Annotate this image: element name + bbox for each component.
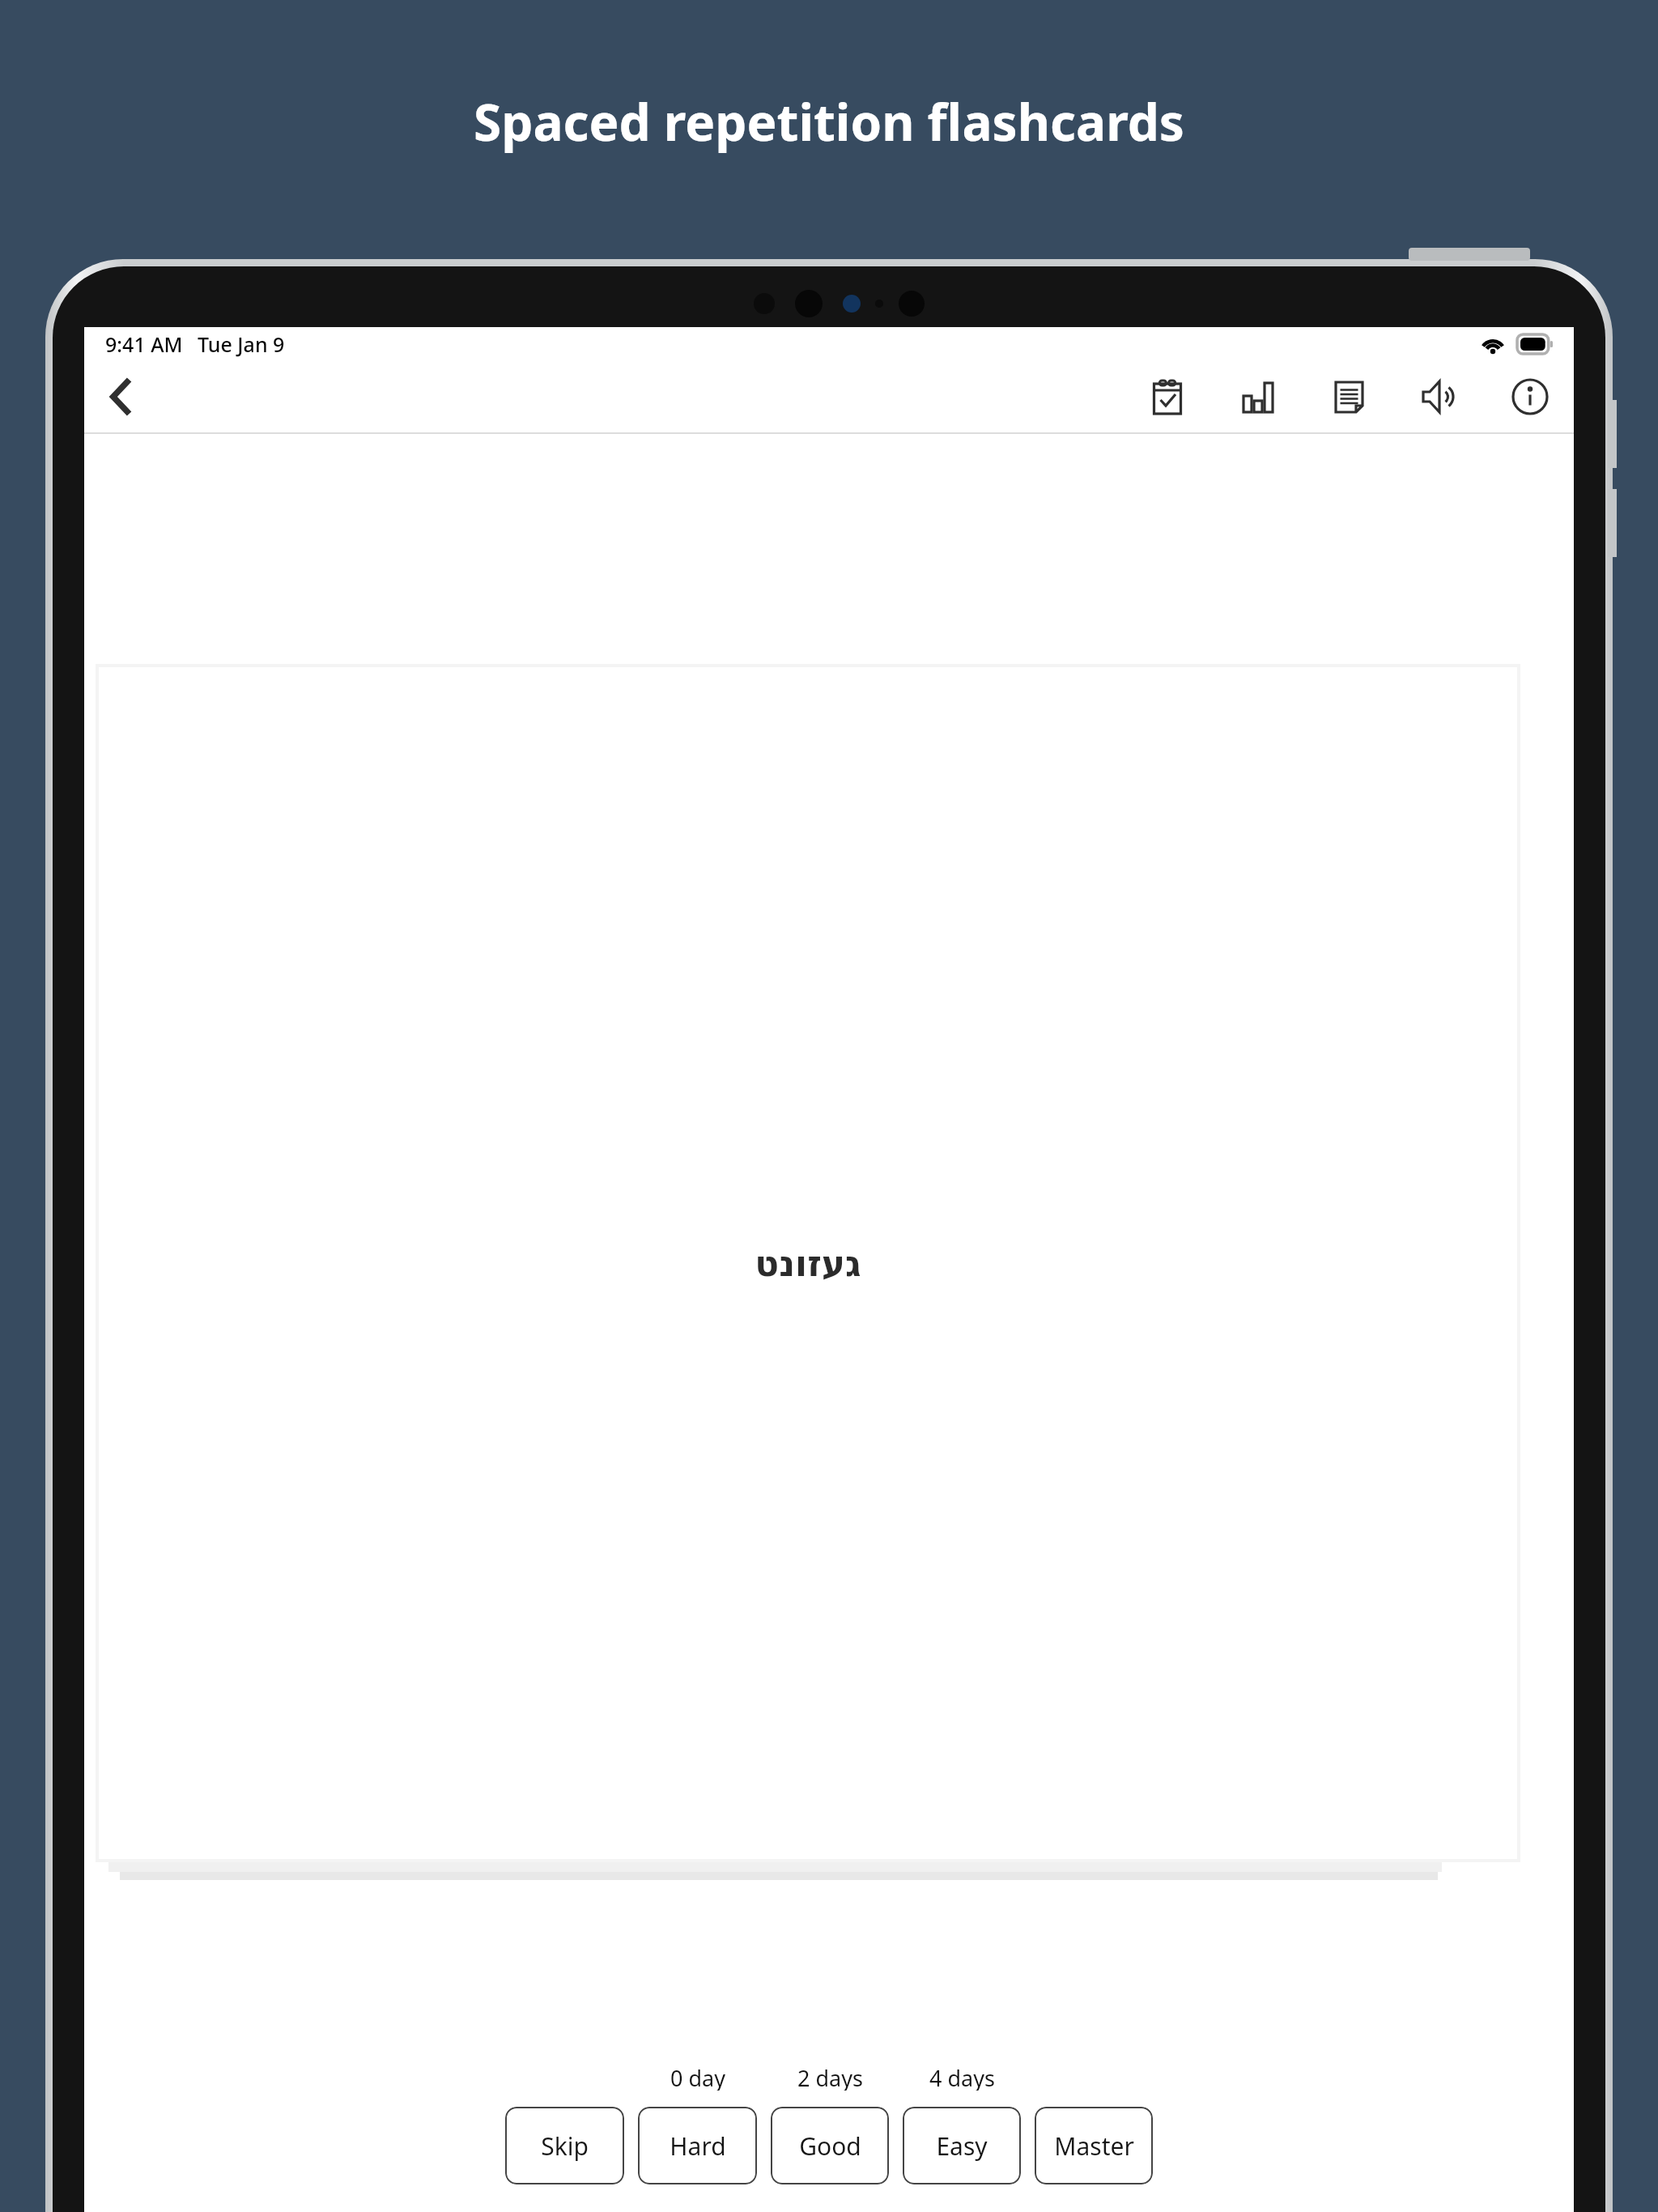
button[interactable]: Hard bbox=[638, 2107, 757, 2184]
staticText: Tue Jan 9 bbox=[198, 330, 285, 358]
button[interactable]: Skip bbox=[505, 2107, 624, 2184]
button[interactable]: געזונט bbox=[99, 667, 1517, 1859]
staticText: Good bbox=[799, 2129, 861, 2163]
staticText: 9:41 AM bbox=[105, 330, 183, 358]
button[interactable]: Back bbox=[92, 368, 151, 426]
button[interactable]: Audio bbox=[1414, 371, 1465, 423]
staticText: 4 days bbox=[929, 2063, 995, 2091]
staticText: Master bbox=[1054, 2129, 1134, 2163]
button[interactable]: Statistics bbox=[1232, 371, 1284, 423]
button[interactable]: Easy bbox=[903, 2107, 1021, 2184]
button[interactable]: Master bbox=[1035, 2107, 1153, 2184]
button[interactable]: Info bbox=[1504, 371, 1556, 423]
button[interactable]: Good bbox=[771, 2107, 889, 2184]
staticText: Spaced repetition flashcards bbox=[474, 87, 1184, 155]
button[interactable]: Schedule bbox=[1141, 371, 1193, 423]
staticText: Hard bbox=[670, 2129, 726, 2163]
staticText: 2 days bbox=[797, 2063, 863, 2091]
button[interactable]: Notes bbox=[1323, 371, 1375, 423]
staticText: Skip bbox=[541, 2129, 589, 2163]
staticText: 0 day bbox=[670, 2063, 725, 2091]
staticText: Easy bbox=[936, 2129, 988, 2163]
staticText: געזונט bbox=[755, 1243, 861, 1284]
